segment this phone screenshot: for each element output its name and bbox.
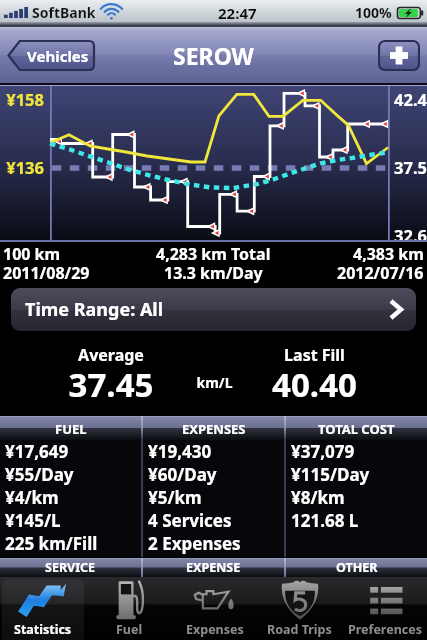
staticText: 42.4 (394, 88, 427, 110)
staticText: 2012/07/16 (337, 262, 424, 284)
button[interactable]: Vehicles (7, 40, 95, 71)
staticText: 121.68 L (291, 509, 359, 532)
staticText: ¥136 (0, 156, 44, 178)
staticText: 32.6 (394, 224, 427, 246)
staticText: TOTAL COST (318, 420, 395, 438)
staticText: ¥55/Day (5, 463, 74, 486)
staticText: Expenses (186, 621, 244, 638)
staticText: Time Range: All (25, 297, 164, 322)
staticText: 2011/08/29 (3, 262, 90, 284)
staticText: ¥37,079 (291, 440, 355, 463)
staticText: Fuel (116, 621, 143, 638)
staticText: 22:47 (218, 3, 257, 23)
staticText: ¥8/km (291, 486, 345, 509)
staticText: FUEL (55, 420, 87, 438)
staticText: Last Fill (202, 344, 427, 366)
button[interactable]: Preferences (344, 579, 425, 640)
staticText: 37.45 (0, 362, 222, 407)
staticText: ¥145/L (5, 509, 61, 532)
staticText: Statistics (14, 621, 72, 638)
staticText: SoftBank (32, 3, 96, 22)
staticText: Vehicles (27, 46, 89, 66)
staticText: 225 km/Fill (5, 532, 98, 555)
staticText: ¥19,430 (148, 440, 212, 463)
staticText: 2 Expenses (148, 532, 241, 555)
staticText: SEROW (173, 40, 254, 71)
staticText: SERVICE (45, 559, 96, 576)
button[interactable]: Road Trips (259, 579, 340, 640)
staticText: 100% (355, 3, 392, 22)
staticText: 40.40 (202, 362, 427, 407)
staticText: 100 km (3, 243, 61, 265)
button[interactable]: Statistics (2, 579, 84, 640)
staticText: 37.5 (394, 156, 427, 178)
staticText: ¥4/km (5, 486, 59, 509)
staticText: EXPENSES (182, 420, 246, 438)
button[interactable]: Time Range: All (11, 288, 416, 331)
staticText: ¥60/Day (148, 463, 217, 486)
staticText: EXPENSE (186, 559, 241, 576)
staticText: 4,283 km Total (156, 243, 271, 265)
staticText: Road Trips (267, 621, 332, 638)
staticText: Average (0, 344, 222, 366)
staticText: ¥158 (0, 88, 44, 110)
staticText: 4 Services (148, 509, 232, 532)
staticText: OTHER (336, 559, 378, 576)
button[interactable]: Add (378, 40, 420, 71)
button[interactable]: Expenses (174, 579, 255, 640)
staticText: km/L (1, 373, 427, 392)
staticText: 13.3 km/Day (164, 262, 263, 284)
staticText: Preferences (348, 621, 422, 638)
staticText: ¥5/km (148, 486, 202, 509)
staticText: ¥115/Day (291, 463, 370, 486)
button[interactable]: Fuel (88, 579, 170, 640)
staticText: ¥17,649 (5, 440, 69, 463)
staticText: 4,383 km (353, 243, 424, 265)
